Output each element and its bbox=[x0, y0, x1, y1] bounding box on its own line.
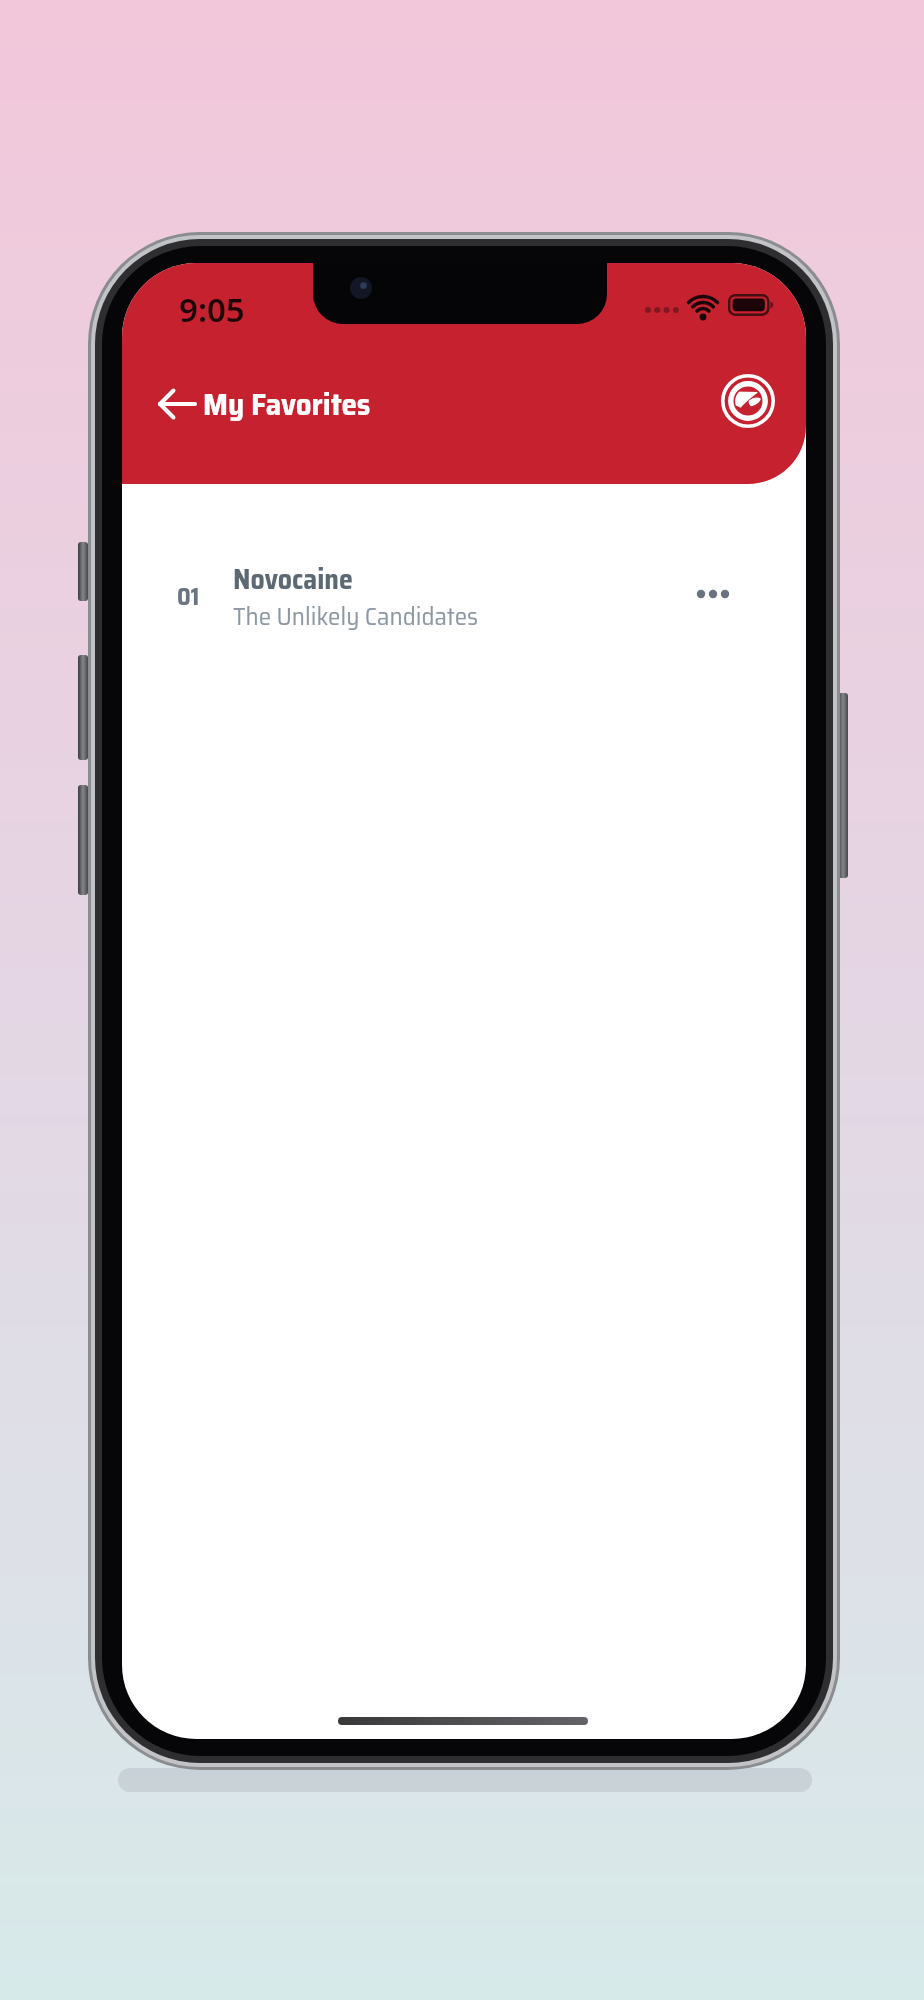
button[interactable] bbox=[722, 375, 774, 427]
button[interactable] bbox=[687, 578, 737, 610]
staticText: Novocaine bbox=[233, 557, 353, 601]
button[interactable] bbox=[150, 385, 198, 423]
staticText: My Favorites bbox=[203, 380, 371, 429]
staticText: The Unlikely Candidates bbox=[233, 597, 479, 636]
button[interactable]: 01 bbox=[152, 548, 776, 644]
staticText: 9:05 bbox=[179, 287, 245, 332]
staticText: 01 bbox=[177, 578, 200, 616]
